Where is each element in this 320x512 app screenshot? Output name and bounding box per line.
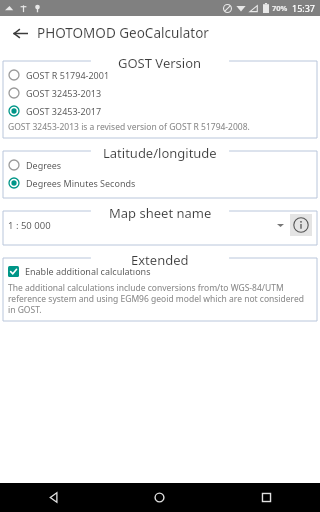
staticText: Enable additional calculations (25, 265, 151, 277)
staticText: Degrees (26, 159, 62, 171)
staticText: GOST 32453-2013 (26, 87, 102, 99)
staticText: The additional calculations include conv… (8, 282, 311, 315)
staticText: GOST 32453-2017 (26, 105, 102, 117)
button[interactable]: Recents (213, 483, 320, 512)
button[interactable]: Degrees Minutes Seconds (3, 174, 317, 192)
staticText: GOST 32453-2013 is a revised version of … (8, 121, 250, 133)
staticText: Degrees Minutes Seconds (26, 177, 136, 189)
staticText: 15:37 (292, 2, 316, 14)
button[interactable]: Back (0, 483, 106, 512)
button[interactable]: GOST 32453-2017 (3, 102, 317, 120)
staticText: GOST Version (118, 54, 202, 72)
staticText: GOST R 51794-2001 (26, 69, 110, 81)
staticText: 1 : 50 000 (8, 219, 51, 232)
button[interactable]: GOST R 51794-2001 (3, 66, 317, 84)
staticText: Extended (131, 251, 189, 269)
staticText: 70% (272, 3, 288, 13)
button[interactable]: 1 : 50 000 (8, 219, 284, 232)
button[interactable]: Degrees (3, 156, 317, 174)
button[interactable]: Home (106, 483, 213, 512)
button[interactable]: GOST 32453-2013 (3, 84, 317, 102)
button[interactable]: Back (8, 21, 32, 45)
button[interactable]: Info (290, 214, 312, 236)
staticText: PHOTOMOD GeoCalculator (37, 24, 209, 42)
button[interactable]: Enable additional calculations (3, 263, 317, 279)
staticText: Latitude/longitude (103, 144, 217, 162)
staticText: Map sheet name (109, 204, 212, 222)
